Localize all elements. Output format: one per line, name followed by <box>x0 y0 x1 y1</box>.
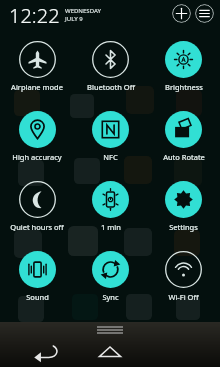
button[interactable]: Sound <box>0 247 74 317</box>
button[interactable]: Home <box>96 341 124 361</box>
button[interactable]: 1 min <box>74 177 147 247</box>
staticText: 12:22 <box>9 2 60 29</box>
staticText: Auto Rotate <box>163 152 205 162</box>
staticText: Airplane mode <box>11 82 63 92</box>
staticText: Wi-Fi Off <box>168 292 199 302</box>
button[interactable]: NFC <box>74 107 147 177</box>
button[interactable]: Back <box>32 341 60 361</box>
staticText: Settings <box>169 222 198 232</box>
staticText: 1 min <box>101 222 121 232</box>
button[interactable]: High accuracy <box>0 107 74 177</box>
staticText: NFC <box>103 152 118 162</box>
button[interactable]: Wi-Fi Off <box>147 247 220 317</box>
staticText: Sync <box>102 292 119 302</box>
button[interactable]: Airplane mode <box>0 37 74 107</box>
staticText: OFF <box>162 345 185 361</box>
staticText: JULY 9 <box>65 15 83 23</box>
button[interactable]: Sync <box>74 247 147 317</box>
staticText: WEDNESDAY <box>65 7 102 15</box>
button[interactable]: Settings <box>147 177 220 247</box>
staticText: High accuracy <box>12 152 62 162</box>
staticText: Bluetooth Off <box>87 82 135 92</box>
staticText: Sound <box>26 292 49 302</box>
button[interactable]: Menu <box>195 4 214 23</box>
button[interactable]: Auto Rotate <box>147 107 220 177</box>
button[interactable]: Brightness <box>147 37 220 107</box>
button[interactable]: Bluetooth Off <box>74 37 147 107</box>
button[interactable]: Add <box>172 4 191 23</box>
staticText: Brightness <box>165 82 203 92</box>
staticText: DROID <box>163 323 210 342</box>
button[interactable]: Quiet hours off <box>0 177 74 247</box>
staticText: Quiet hours off <box>10 222 64 232</box>
